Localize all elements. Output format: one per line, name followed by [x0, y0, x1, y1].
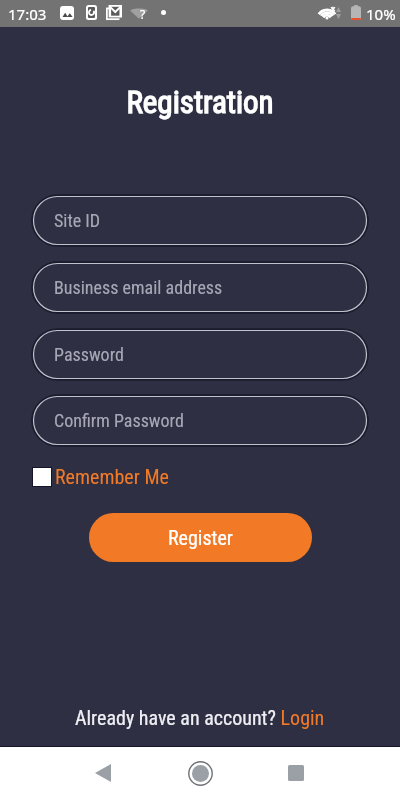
staticText: Password — [54, 344, 124, 365]
button[interactable]: Password — [32, 329, 368, 380]
button[interactable]: Recent apps — [272, 749, 320, 797]
button[interactable]: Register — [89, 513, 312, 562]
staticText: Register — [168, 526, 233, 549]
button[interactable]: Site ID — [32, 195, 368, 246]
staticText: Registration — [0, 84, 400, 120]
button[interactable]: Confirm Password — [32, 395, 368, 446]
staticText: Confirm Password — [54, 410, 184, 431]
staticText: 10% — [366, 4, 396, 24]
button[interactable]: Back — [79, 749, 127, 797]
button[interactable]: Already have an account? Login — [75, 706, 325, 729]
staticText: 17:03 — [8, 4, 47, 24]
button[interactable]: Home — [176, 749, 224, 797]
button[interactable]: Business email address — [32, 262, 368, 313]
staticText: Site ID — [54, 210, 101, 231]
staticText: Business email address — [54, 277, 223, 298]
button[interactable]: Remember Me — [32, 465, 169, 488]
staticText: Remember Me — [55, 465, 169, 488]
staticText: ? — [140, 6, 146, 22]
